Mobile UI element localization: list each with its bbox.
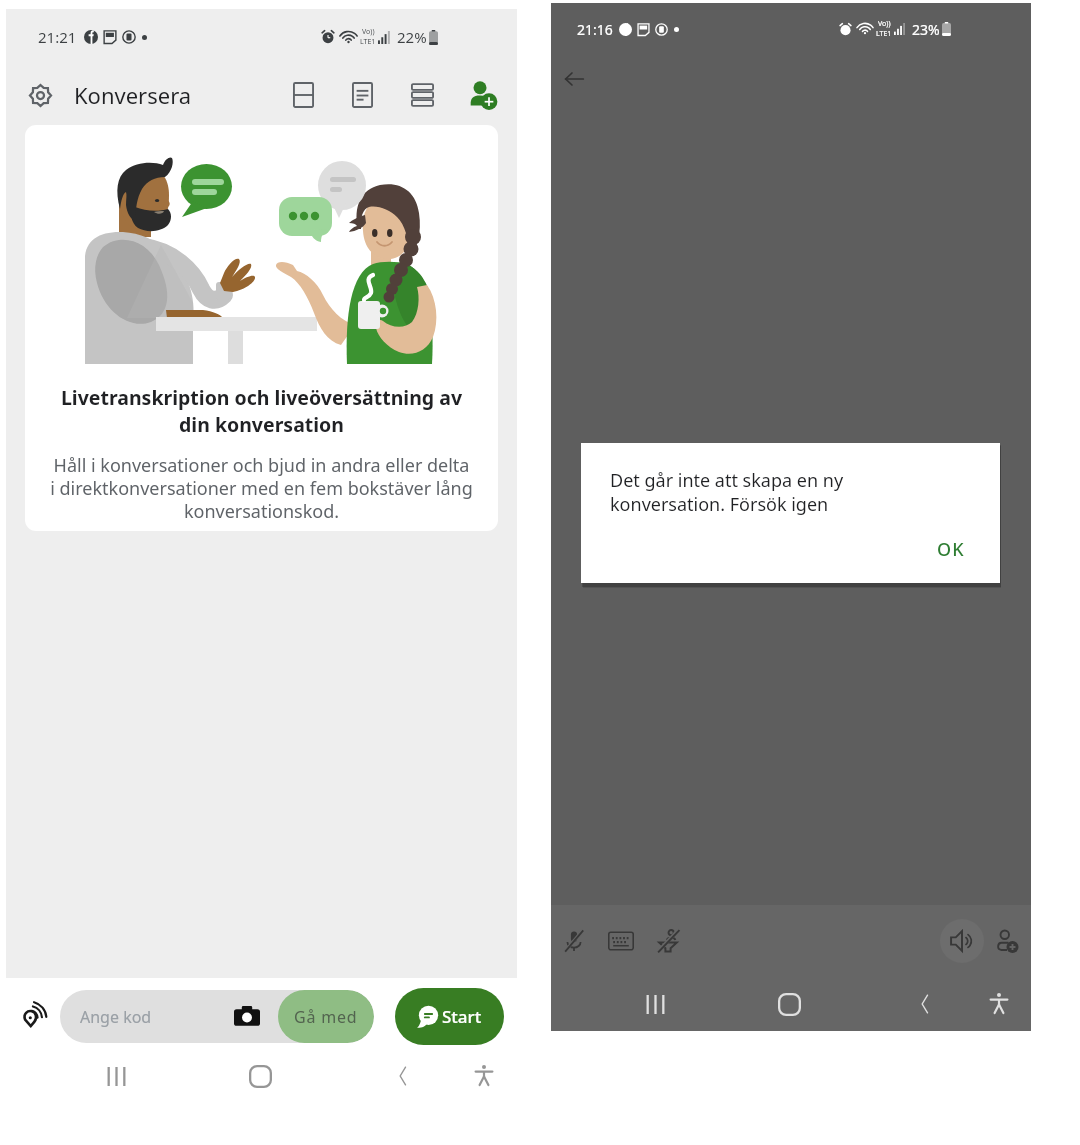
staticText: LTE1 xyxy=(876,29,892,39)
button[interactable]: Back xyxy=(903,982,947,1026)
staticText: Start xyxy=(442,1005,482,1028)
staticText: Gå med xyxy=(294,1006,358,1028)
button[interactable]: Add person xyxy=(460,73,504,117)
button[interactable]: Livetranskription och liveöversättning a… xyxy=(25,125,498,531)
button[interactable]: Start xyxy=(395,988,504,1045)
button[interactable]: Back xyxy=(553,58,595,100)
button[interactable]: Transcript xyxy=(340,73,384,117)
button[interactable]: Speaker xyxy=(940,919,984,963)
staticText: LTE1 xyxy=(360,37,376,47)
button[interactable]: Home xyxy=(767,982,811,1026)
button[interactable]: Home xyxy=(238,1054,282,1098)
staticText: Vo)) xyxy=(878,19,891,29)
button[interactable]: Keyboard xyxy=(599,919,643,963)
button[interactable]: Recents xyxy=(633,982,677,1026)
button[interactable]: OK xyxy=(921,531,981,567)
staticText: Ange kod xyxy=(80,1006,152,1028)
button[interactable]: Mute xyxy=(552,919,596,963)
staticText: Livetranskription och liveöversättning a… xyxy=(25,384,498,438)
button[interactable]: Gå med xyxy=(278,990,374,1043)
button[interactable]: Nearby xyxy=(14,995,58,1039)
button[interactable]: Accessibility xyxy=(462,1054,506,1098)
button[interactable]: Ange kod xyxy=(60,990,374,1043)
button[interactable]: Recents xyxy=(94,1054,138,1098)
staticText: Konversera xyxy=(74,80,192,110)
button[interactable]: Translate off xyxy=(646,919,690,963)
button[interactable]: Stacked view xyxy=(400,73,444,117)
button[interactable]: Split view xyxy=(281,73,325,117)
button[interactable]: Add person xyxy=(984,919,1028,963)
staticText: Vo)) xyxy=(362,27,375,37)
staticText: 23% xyxy=(912,20,940,39)
staticText: 21:16 xyxy=(577,20,613,39)
button[interactable]: Accessibility xyxy=(977,982,1021,1026)
button[interactable]: Back xyxy=(381,1054,425,1098)
staticText: 21:21 xyxy=(38,27,77,47)
staticText: Håll i konversationer och bjud in andra … xyxy=(25,453,498,523)
button[interactable]: Scan code xyxy=(229,999,265,1035)
staticText: OK xyxy=(937,537,965,562)
staticText: Det går inte att skapa en ny konversatio… xyxy=(610,468,844,516)
staticText: 22% xyxy=(397,27,427,47)
button[interactable]: Settings xyxy=(18,73,62,117)
